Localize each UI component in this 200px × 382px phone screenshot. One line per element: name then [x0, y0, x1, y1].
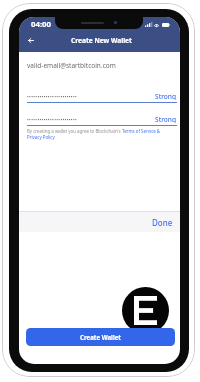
button[interactable]: Done — [145, 213, 180, 232]
staticText: Create Wallet — [80, 333, 122, 341]
button[interactable]: Back — [22, 31, 40, 49]
staticText: •••••••••••••••••••••••• — [27, 117, 78, 123]
staticText: Terms of Service & — [122, 128, 161, 134]
staticText: Strong — [155, 115, 177, 123]
staticText: Create New Wallet — [71, 36, 132, 45]
staticText: By creating a wallet you agree to Blockc… — [27, 128, 122, 134]
staticText: Done — [152, 217, 173, 228]
staticText: valid-email@startbitcoin.com — [27, 61, 116, 70]
staticText: •••••••••••••••••••••••• — [27, 94, 78, 100]
staticText: Privacy Policy — [27, 134, 55, 140]
staticText: 04:00 — [31, 19, 52, 30]
staticText: Strong — [155, 92, 177, 100]
button[interactable]: Create Wallet — [26, 328, 175, 346]
